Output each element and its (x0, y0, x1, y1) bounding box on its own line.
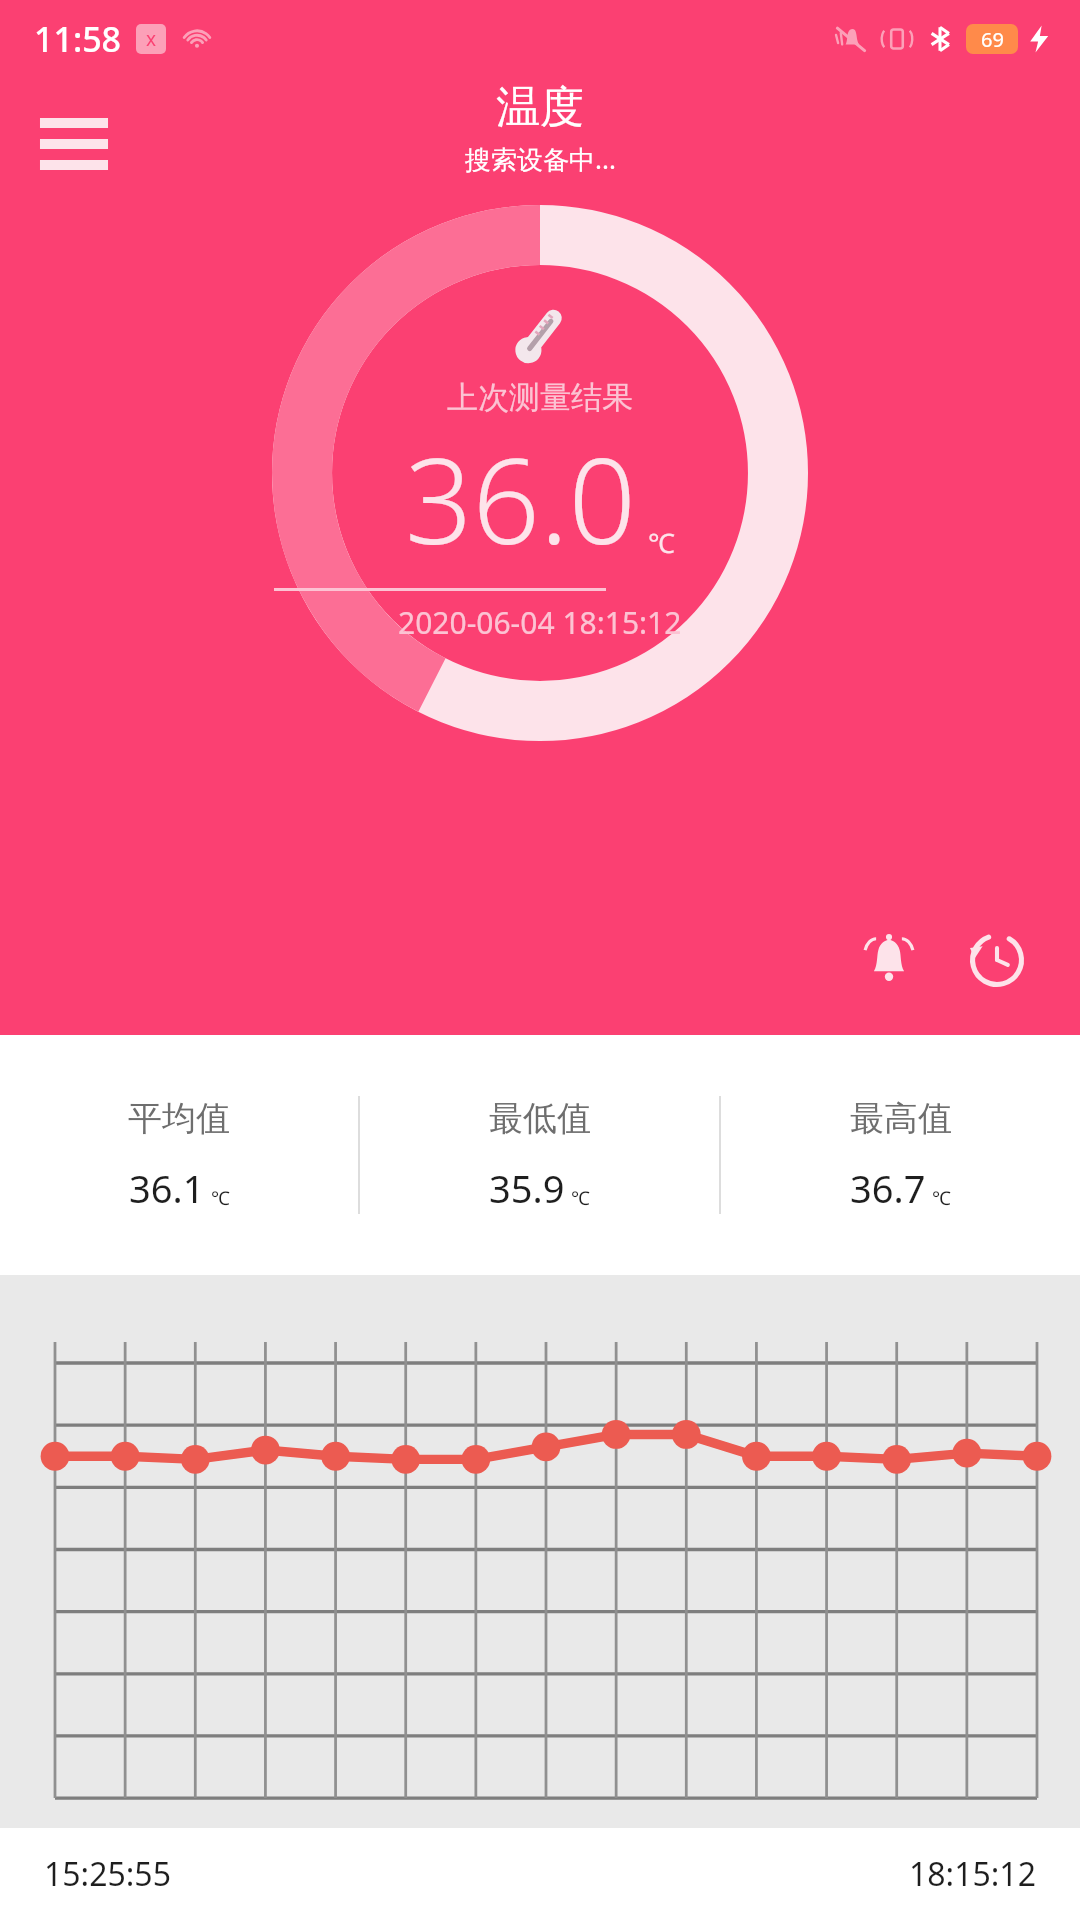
staticText: ℃ (932, 1185, 951, 1211)
staticText: ℃ (211, 1185, 230, 1211)
staticText: 69 (981, 26, 1004, 53)
staticText: 2020-06-04 18:15:12 (398, 602, 682, 643)
button[interactable]: History (958, 921, 1036, 999)
staticText: ℃ (648, 524, 675, 561)
staticText: 36.7 (850, 1162, 926, 1214)
staticText: 平均值 (128, 1097, 230, 1140)
button[interactable]: 最低值 (360, 1035, 719, 1275)
staticText: 36.0 (405, 418, 636, 579)
staticText: 36.1 (129, 1162, 205, 1214)
button[interactable]: Menu (20, 98, 128, 198)
staticText: 15:25:55 (44, 1852, 171, 1896)
button[interactable]: Alarm (850, 921, 928, 999)
staticText: 最低值 (489, 1097, 591, 1140)
button[interactable]: 平均值 (0, 1035, 358, 1275)
staticText: 18:15:12 (909, 1852, 1036, 1896)
staticText: 最高值 (850, 1097, 952, 1140)
staticText: 11:58 (34, 16, 122, 62)
staticText: 上次测量结果 (447, 378, 633, 417)
staticText: 搜索设备中... (465, 141, 616, 177)
staticText: ℃ (571, 1185, 590, 1211)
staticText: 35.9 (489, 1162, 565, 1214)
button[interactable]: 最高值 (721, 1035, 1080, 1275)
staticText: x (146, 26, 157, 52)
staticText: 温度 (496, 80, 584, 135)
